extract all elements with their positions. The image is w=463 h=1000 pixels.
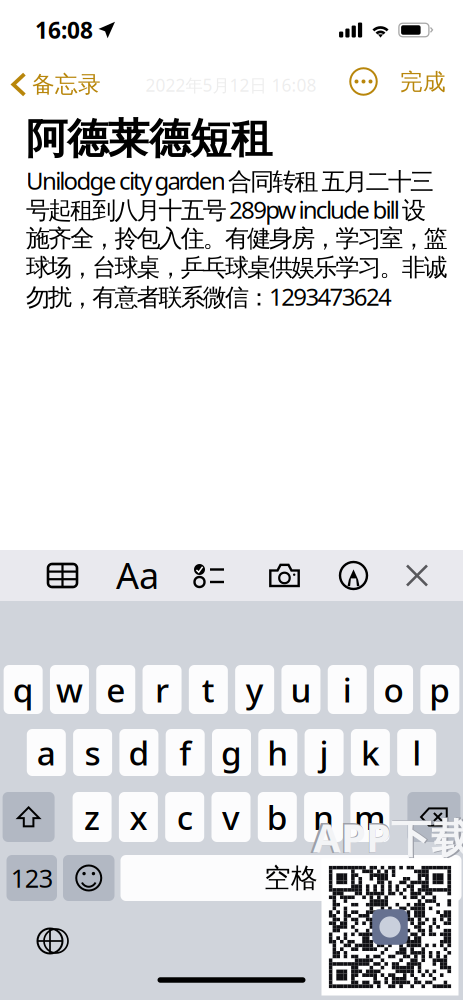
button[interactable]: j xyxy=(305,729,344,776)
staticText: c xyxy=(177,795,193,839)
staticText: 备忘录 xyxy=(32,71,101,98)
button[interactable]: Aa xyxy=(112,549,162,600)
staticText: y xyxy=(246,667,264,712)
button[interactable]: y xyxy=(235,665,274,714)
staticText: e xyxy=(106,667,125,712)
button[interactable]: p xyxy=(420,665,459,714)
button[interactable]: 完成 xyxy=(394,60,452,104)
button[interactable]: Switch keyboard xyxy=(28,921,72,961)
button[interactable]: w xyxy=(50,665,89,714)
staticText: o xyxy=(384,667,404,712)
button[interactable]: n xyxy=(304,792,343,842)
staticText: v xyxy=(222,795,240,839)
staticText: 球场，台球桌，乒乓球桌供娱乐学习。非诚 xyxy=(26,253,448,282)
staticText: n xyxy=(313,795,334,839)
staticText: g xyxy=(221,730,242,775)
button[interactable]: i xyxy=(328,665,367,714)
staticText: i xyxy=(343,667,352,712)
staticText: z xyxy=(84,795,100,839)
button[interactable]: Emoji xyxy=(63,855,114,901)
staticText: w xyxy=(56,667,83,712)
button[interactable]: f xyxy=(166,729,205,776)
staticText: a xyxy=(37,730,56,775)
staticText: 完成 xyxy=(400,68,446,96)
staticText: Aa xyxy=(116,551,159,599)
button[interactable]: b xyxy=(258,792,297,842)
button[interactable]: Insert table xyxy=(37,550,87,601)
staticText: h xyxy=(267,730,288,775)
button[interactable]: d xyxy=(119,729,158,776)
staticText: l xyxy=(412,730,421,775)
staticText: 阿德莱德短租 xyxy=(26,114,272,164)
button[interactable]: Delete xyxy=(407,792,460,842)
button[interactable]: z xyxy=(73,792,112,842)
button[interactable]: 备忘录 xyxy=(0,62,112,106)
staticText: t xyxy=(202,667,215,712)
staticText: APP下载 xyxy=(313,810,463,864)
staticText: k xyxy=(361,730,380,775)
button[interactable]: 123 xyxy=(6,855,57,901)
button[interactable]: x xyxy=(119,792,158,842)
staticText: q xyxy=(13,667,34,712)
button[interactable]: 空格 xyxy=(120,855,461,901)
staticText: u xyxy=(290,667,311,712)
button[interactable]: o xyxy=(374,665,413,714)
button[interactable]: l xyxy=(397,729,436,776)
staticText: Unilodge city garden 合同转租 五月二十三 xyxy=(26,164,434,196)
button[interactable]: Shift xyxy=(3,792,55,842)
staticText: j xyxy=(320,730,329,775)
button[interactable]: g xyxy=(212,729,251,776)
staticText: x xyxy=(129,795,147,839)
button[interactable]: u xyxy=(281,665,320,714)
staticText: 勿扰，有意者联系微信：1293473624 xyxy=(26,281,392,312)
button[interactable]: k xyxy=(351,729,390,776)
staticText: 123 xyxy=(11,861,53,895)
button[interactable]: Checklist xyxy=(184,550,234,601)
button[interactable]: s xyxy=(73,729,112,776)
staticText: d xyxy=(128,730,149,775)
button[interactable]: e xyxy=(96,665,135,714)
button[interactable]: v xyxy=(211,792,250,842)
staticText: APP下载 xyxy=(310,809,463,864)
button[interactable]: More options xyxy=(341,59,385,103)
staticText: f xyxy=(179,730,191,775)
staticText: 16:08 xyxy=(35,15,93,45)
staticText: 空格 xyxy=(264,862,318,894)
staticText: s xyxy=(85,730,101,775)
staticText: p xyxy=(429,667,450,712)
button[interactable]: r xyxy=(142,665,181,714)
button[interactable]: Markup xyxy=(328,550,378,601)
button[interactable]: c xyxy=(165,792,204,842)
button[interactable]: a xyxy=(27,729,66,776)
button[interactable]: t xyxy=(189,665,228,714)
staticText: b xyxy=(267,795,288,839)
staticText: r xyxy=(155,667,169,712)
button[interactable]: Camera xyxy=(259,550,309,601)
staticText: 号起租到八月十五号 289pw include bill 设 xyxy=(26,194,426,225)
staticText: m xyxy=(354,795,386,839)
button[interactable]: h xyxy=(258,729,297,776)
button[interactable]: q xyxy=(4,665,43,714)
staticText: 2022年5月12日 16:08 xyxy=(145,73,316,96)
button[interactable]: Hide keyboard xyxy=(392,550,442,601)
staticText: 施齐全，拎包入住。有健身房，学习室，篮 xyxy=(26,224,448,253)
button[interactable]: m xyxy=(350,792,389,842)
